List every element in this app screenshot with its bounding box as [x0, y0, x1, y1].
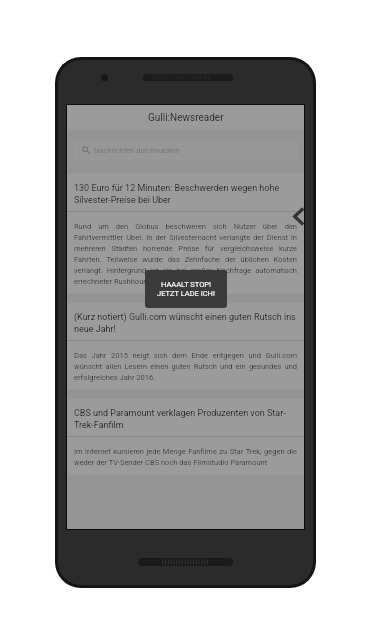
button[interactable]: (Kurz notiert) Gulli.com wünscht einen g…	[67, 303, 304, 390]
button[interactable]: Nachrichten durchsuchen	[73, 140, 298, 160]
staticText: Rund um den Globus beschweren sich Nutze…	[74, 222, 297, 286]
staticText: Das Jahr 2015 neigt sich dem Ende entgeg…	[74, 351, 297, 382]
staticText: HAAALT STOP!	[161, 280, 211, 289]
staticText: Nachrichten durchsuchen	[94, 146, 180, 155]
staticText: CBS und Paramount verklagen Produzenten …	[74, 408, 297, 430]
staticText: Gulli:Newsreader	[148, 112, 224, 124]
staticText: 130 Euro für 12 Minuten: Beschwerden weg…	[74, 183, 297, 205]
button[interactable]: CBS und Paramount verklagen Produzenten …	[67, 399, 304, 475]
staticText: (Kurz notiert) Gulli.com wünscht einen g…	[74, 312, 297, 334]
staticText: Im Internet kursieren jede Menge Fanfilm…	[74, 447, 297, 467]
button[interactable]: Open navigation drawer	[292, 206, 304, 227]
button[interactable]: 130 Euro für 12 Minuten: Beschwerden weg…	[67, 174, 304, 294]
staticText: JETZT LADE ICH!	[157, 289, 215, 298]
